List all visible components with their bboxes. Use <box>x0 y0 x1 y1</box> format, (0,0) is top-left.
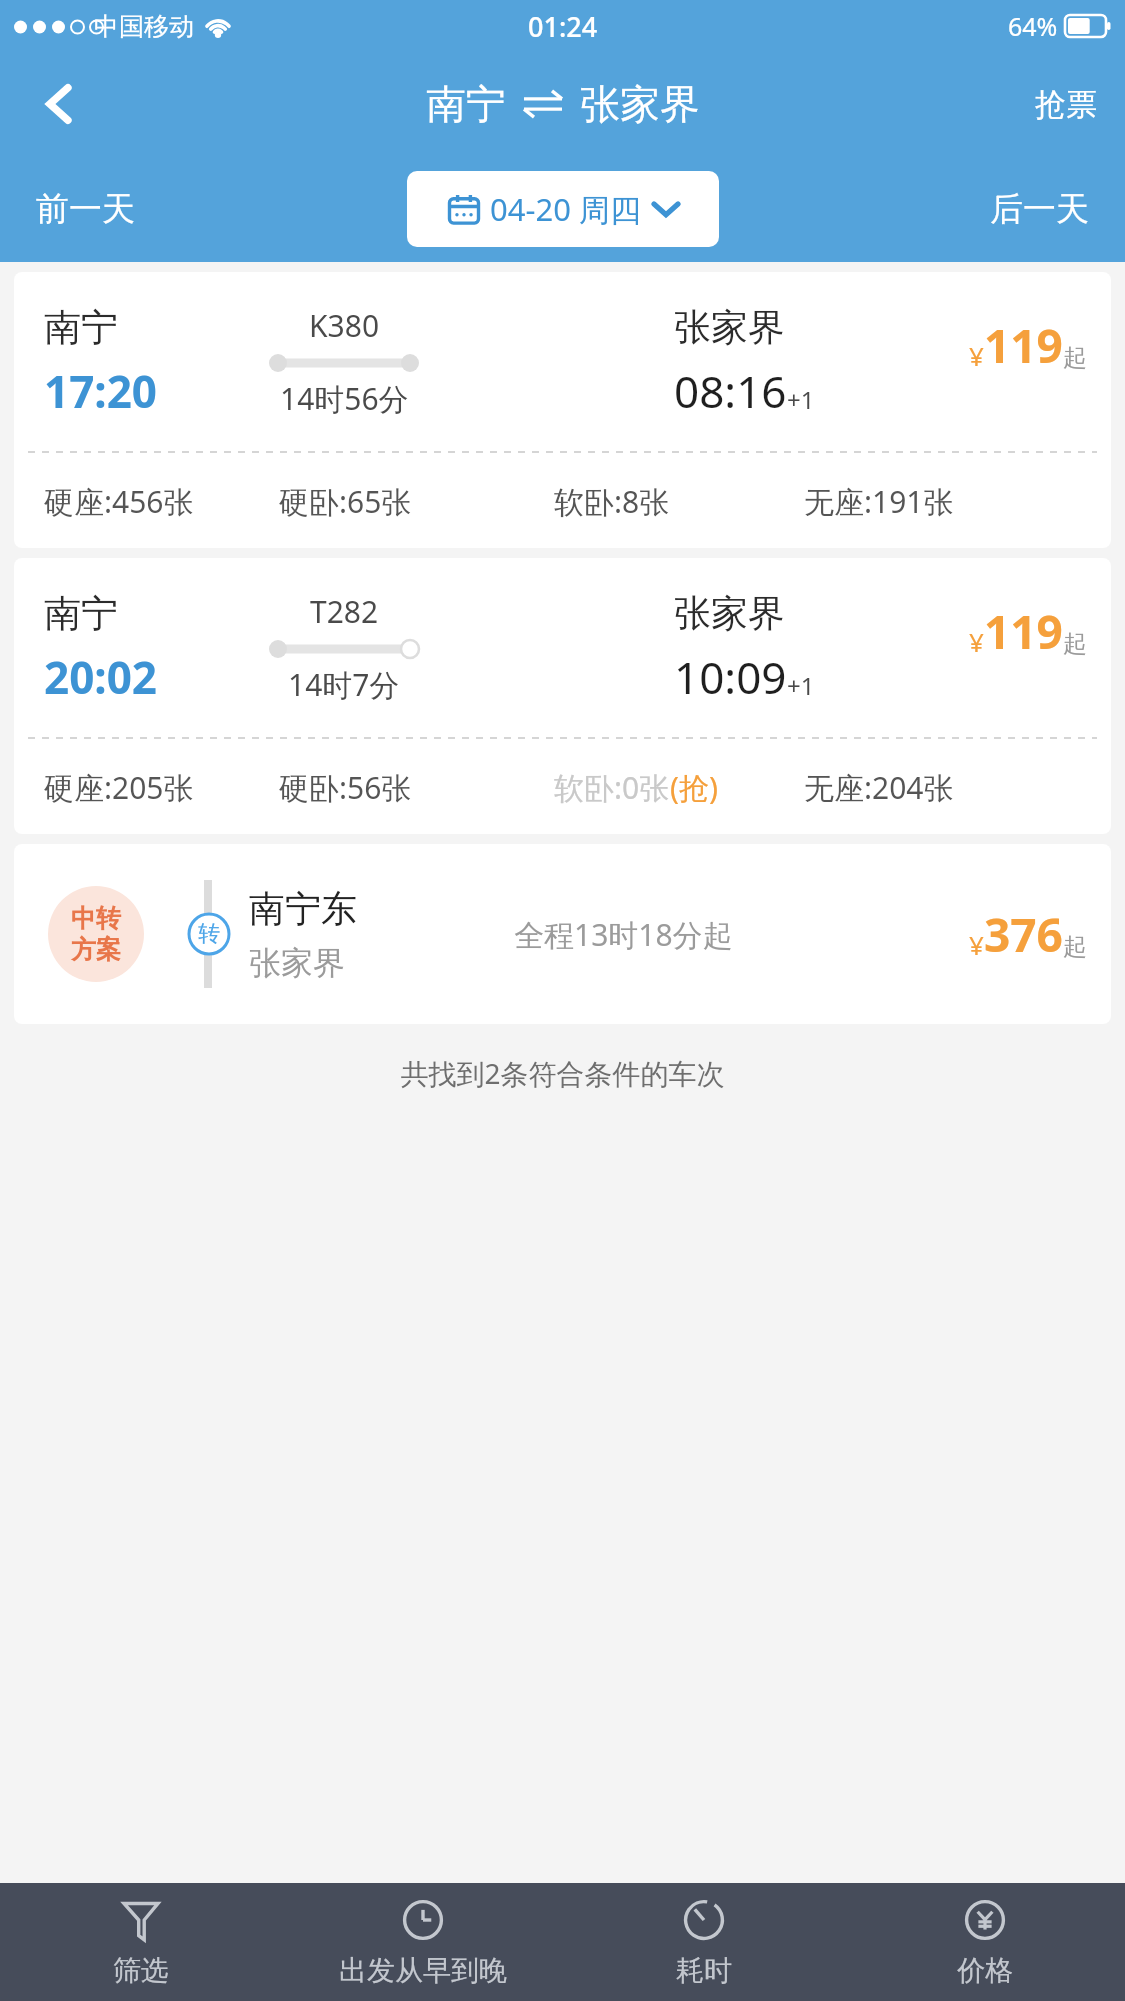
staticText: 软卧:8张 <box>554 481 670 522</box>
staticText: (抢) <box>670 767 718 808</box>
staticText: +1 <box>787 669 815 702</box>
staticText: 转 <box>198 920 220 948</box>
button[interactable]: 后一天 <box>990 188 1089 230</box>
staticText: 出发从早到晚 <box>339 1953 507 1988</box>
staticText: 硬座:205张 <box>44 767 194 808</box>
staticText: 无座:204张 <box>804 767 954 808</box>
staticText: 无座:191张 <box>804 481 954 522</box>
staticText: 起 <box>1063 629 1087 659</box>
staticText: 376 <box>984 903 1063 966</box>
staticText: 南宁东 <box>249 886 357 931</box>
staticText: 起 <box>1063 932 1087 962</box>
staticText: 01:24 <box>528 8 598 45</box>
staticText: 抢票 <box>1035 85 1097 124</box>
staticText: ¥ <box>969 338 984 373</box>
staticText: 20:02 <box>44 647 158 707</box>
staticText: 14时7分 <box>288 664 400 705</box>
staticText: 硬卧:56张 <box>279 767 412 808</box>
staticText: 软卧:0张 <box>554 767 670 808</box>
staticText: 起 <box>1063 343 1087 373</box>
staticText: K380 <box>309 305 380 346</box>
staticText: 价格 <box>957 1953 1013 1988</box>
staticText: 南宁 <box>426 79 506 129</box>
staticText: ¥ <box>969 624 984 659</box>
button[interactable]: 出发从早到晚 <box>282 1883 563 2001</box>
staticText: 硬座:456张 <box>44 481 194 522</box>
staticText: 前一天 <box>36 188 135 230</box>
staticText: 全程13时18分起 <box>514 914 733 955</box>
staticText: 张家界 <box>580 79 700 129</box>
staticText: 14时56分 <box>280 378 409 419</box>
button[interactable]: 04-20 周四 <box>407 171 719 247</box>
staticText: 119 <box>984 314 1063 377</box>
staticText: 后一天 <box>990 188 1089 230</box>
staticText: 张家界 <box>249 943 345 983</box>
button[interactable]: 价格 <box>844 1883 1125 2001</box>
staticText: +1 <box>787 383 815 416</box>
staticText: 南宁 <box>44 590 118 637</box>
button[interactable]: 前一天 <box>36 188 135 230</box>
staticText: 119 <box>984 600 1063 663</box>
button[interactable]: 筛选 <box>0 1883 282 2001</box>
staticText: 筛选 <box>113 1953 169 1988</box>
staticText: ¥ <box>969 927 984 962</box>
staticText: 17:20 <box>44 361 158 421</box>
staticText: 方案 <box>71 934 121 965</box>
button[interactable]: 南宁 <box>14 558 1111 834</box>
staticText: 耗时 <box>676 1953 732 1988</box>
staticText: 张家界 <box>674 590 785 637</box>
staticText: 共找到2条符合条件的车次 <box>0 1054 1125 1092</box>
staticText: 10:09 <box>674 647 787 707</box>
staticText: 04-20 周四 <box>490 188 641 230</box>
staticText: 08:16 <box>674 361 787 421</box>
staticText: 中国移动 <box>94 11 194 42</box>
staticText: 南宁 <box>44 304 118 351</box>
staticText: 64% <box>1008 9 1058 43</box>
button[interactable]: 耗时 <box>563 1883 844 2001</box>
button[interactable]: 中转 <box>14 844 1111 1024</box>
staticText: 硬卧:65张 <box>279 481 412 522</box>
staticText: 张家界 <box>674 304 785 351</box>
button[interactable]: 抢票 <box>1035 85 1097 124</box>
button[interactable]: 南宁 <box>426 79 700 129</box>
button[interactable]: 南宁 <box>14 272 1111 548</box>
button[interactable]: Back <box>0 52 120 156</box>
staticText: T282 <box>310 591 379 632</box>
staticText: 中转 <box>71 903 121 934</box>
